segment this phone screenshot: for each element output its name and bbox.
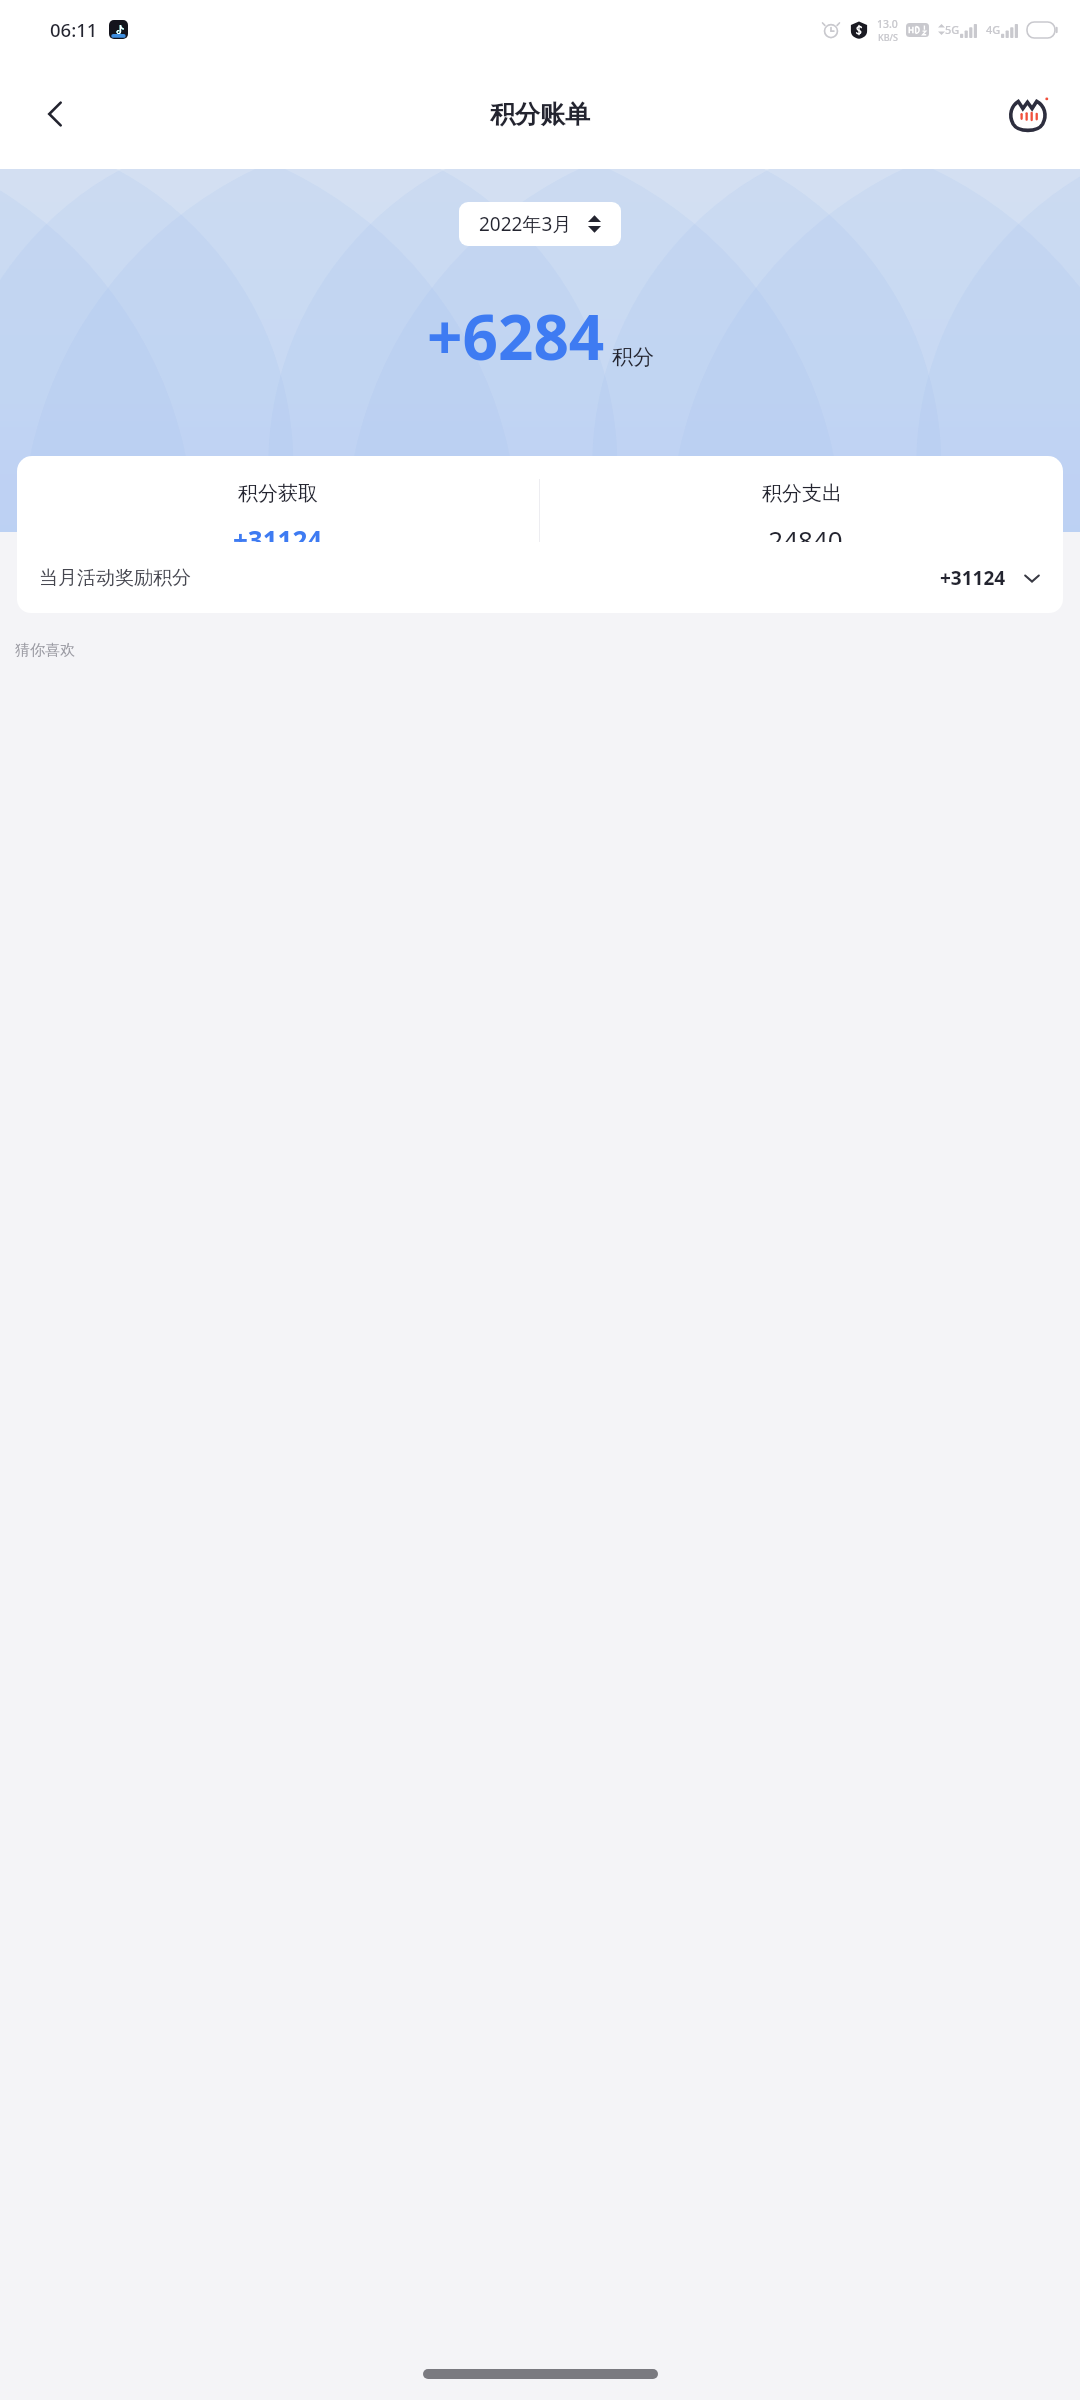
staticText: 积分	[612, 344, 654, 370]
staticText: KB/S	[878, 31, 898, 43]
staticText: 2022年3月	[479, 211, 572, 237]
button[interactable]: 当月活动奖励积分	[17, 542, 1063, 613]
staticText: 猜你喜欢	[15, 641, 75, 660]
staticText: 积分账单	[490, 99, 590, 130]
staticText: 积分获取	[238, 481, 318, 506]
staticText: 5G	[945, 22, 960, 37]
staticText: -24840	[760, 522, 843, 557]
staticText: 积分支出	[762, 481, 842, 506]
staticText: +31124	[233, 522, 323, 557]
button[interactable]: Back	[28, 86, 84, 142]
button[interactable]: 2022年3月	[459, 202, 621, 246]
staticText: 当月活动奖励积分	[39, 566, 191, 590]
staticText: 4G	[986, 22, 1001, 37]
staticText: +6284	[427, 294, 605, 378]
button[interactable]: Assistant	[1002, 86, 1058, 142]
staticText: 06:11	[50, 17, 98, 42]
button[interactable]: 积分支出	[540, 456, 1063, 598]
button[interactable]: 积分获取	[17, 456, 539, 598]
staticText: 13.0	[877, 17, 898, 31]
staticText: +31124	[940, 565, 1006, 591]
